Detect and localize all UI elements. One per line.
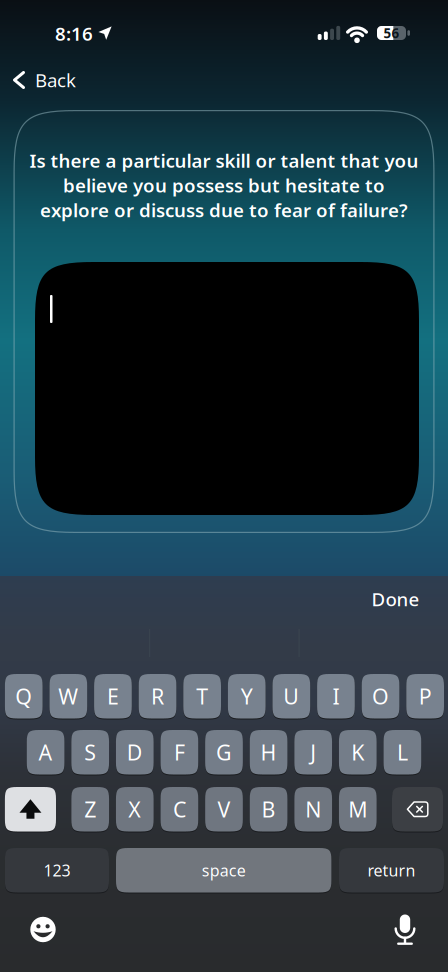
staticText: explore or discuss due to fear of failur… xyxy=(40,198,408,222)
button[interactable]: G xyxy=(205,730,243,774)
staticText: W xyxy=(58,682,78,710)
staticText: S xyxy=(84,738,96,766)
staticText: F xyxy=(174,738,185,766)
staticText: space xyxy=(202,860,246,881)
button[interactable]: Y xyxy=(228,674,266,718)
button[interactable]: I xyxy=(317,674,355,718)
button[interactable]: Back xyxy=(0,58,100,102)
staticText: G xyxy=(216,738,232,766)
staticText: 56 xyxy=(383,24,399,42)
staticText: Back xyxy=(35,68,76,92)
staticText: D xyxy=(127,738,143,766)
staticText: Q xyxy=(15,682,32,710)
button[interactable]: B xyxy=(250,787,287,831)
staticText: Done xyxy=(371,587,419,611)
button[interactable]: R xyxy=(139,674,176,718)
button[interactable]: N xyxy=(294,787,332,831)
staticText: Y xyxy=(241,682,253,710)
staticText: T xyxy=(196,682,208,710)
staticText: return xyxy=(367,860,415,881)
button[interactable]: Emoji xyxy=(21,907,65,951)
button[interactable]: C xyxy=(161,787,198,831)
staticText: K xyxy=(351,738,364,766)
button[interactable]: D xyxy=(116,730,154,774)
button[interactable]: space xyxy=(116,848,331,892)
staticText: X xyxy=(128,795,141,823)
staticText: J xyxy=(310,738,316,766)
button[interactable]: Z xyxy=(71,787,109,831)
staticText: U xyxy=(283,682,299,710)
button[interactable]: Shift xyxy=(5,787,56,831)
button[interactable]: U xyxy=(272,674,310,718)
staticText: C xyxy=(173,795,186,823)
button[interactable]: J xyxy=(294,730,332,774)
staticText: I xyxy=(332,682,339,710)
button[interactable]: L xyxy=(384,730,421,774)
staticText: E xyxy=(107,682,119,710)
staticText: O xyxy=(372,682,389,710)
staticText: 123 xyxy=(43,860,70,881)
staticText: believe you possess but hesitate to xyxy=(63,173,385,198)
button[interactable]: Dictation xyxy=(383,907,427,951)
button[interactable]: K xyxy=(339,730,377,774)
staticText: B xyxy=(262,795,276,823)
button[interactable]: Done xyxy=(349,585,419,612)
button[interactable]: O xyxy=(362,674,399,718)
button[interactable]: 123 xyxy=(5,848,109,892)
staticText: Is there a particular skill or talent th… xyxy=(29,148,418,173)
staticText: 8:16 xyxy=(55,21,93,46)
button[interactable]: T xyxy=(183,674,221,718)
button[interactable]: E xyxy=(94,674,132,718)
staticText: Z xyxy=(84,795,96,823)
button[interactable]: W xyxy=(49,674,87,718)
button[interactable]: M xyxy=(339,787,377,831)
staticText: P xyxy=(419,682,432,710)
button[interactable]: X xyxy=(116,787,154,831)
button[interactable]: return xyxy=(339,848,444,892)
staticText: L xyxy=(397,738,408,766)
staticText: V xyxy=(217,795,230,823)
button[interactable]: S xyxy=(71,730,109,774)
button[interactable]: Q xyxy=(5,674,43,718)
staticText: N xyxy=(305,795,321,823)
button[interactable]: V xyxy=(205,787,243,831)
staticText: R xyxy=(151,682,164,710)
button[interactable]: F xyxy=(161,730,198,774)
button[interactable]: P xyxy=(406,674,444,718)
button[interactable]: H xyxy=(250,730,287,774)
button[interactable]: A xyxy=(27,730,64,774)
staticText: A xyxy=(39,738,53,766)
staticText: H xyxy=(261,738,277,766)
staticText: M xyxy=(348,795,367,823)
button[interactable]: Delete xyxy=(392,787,443,831)
